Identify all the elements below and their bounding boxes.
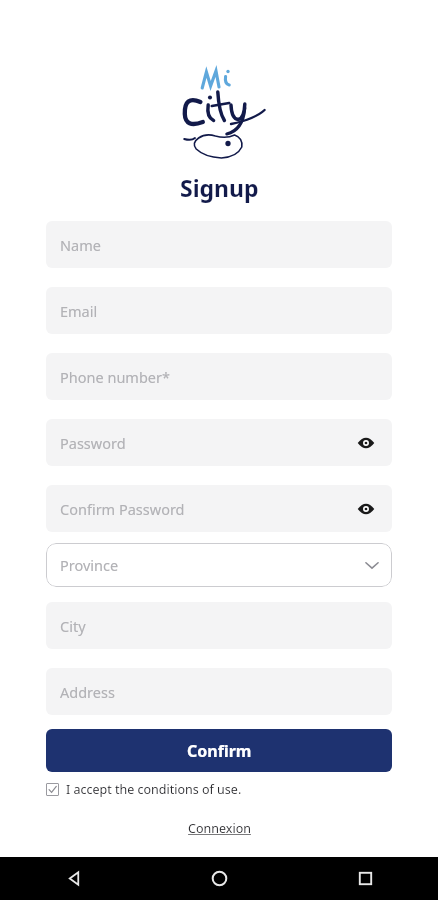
staticText: Name xyxy=(60,235,101,255)
button[interactable]: Confirm Password xyxy=(46,485,392,532)
button[interactable]: City xyxy=(46,602,392,649)
staticText: Address xyxy=(60,682,115,702)
staticText: Email xyxy=(60,301,98,321)
button[interactable]: Home xyxy=(146,857,292,900)
staticText: Password xyxy=(60,433,126,453)
button[interactable]: Show password xyxy=(354,431,378,455)
button[interactable]: Connexion xyxy=(188,820,251,837)
button[interactable]: Confirm xyxy=(46,729,392,772)
button[interactable]: Back xyxy=(0,857,146,900)
button[interactable]: Show password xyxy=(354,497,378,521)
staticText: Phone number* xyxy=(60,367,170,387)
button[interactable]: Phone number* xyxy=(46,353,392,400)
button[interactable]: Name xyxy=(46,221,392,268)
button[interactable]: Province dropdown xyxy=(46,543,392,587)
button[interactable]: Password xyxy=(46,419,392,466)
staticText: Confirm xyxy=(187,740,252,762)
staticText: I accept the conditions of use. xyxy=(66,781,242,798)
staticText: Province xyxy=(60,555,119,575)
button[interactable]: Address xyxy=(46,668,392,715)
staticText: City xyxy=(60,616,86,636)
staticText: Signup xyxy=(180,172,259,203)
button[interactable]: Email xyxy=(46,287,392,334)
button[interactable]: Recent apps xyxy=(292,857,438,900)
staticText: Confirm Password xyxy=(60,499,185,519)
button[interactable]: I accept the conditions of use. xyxy=(46,781,242,798)
